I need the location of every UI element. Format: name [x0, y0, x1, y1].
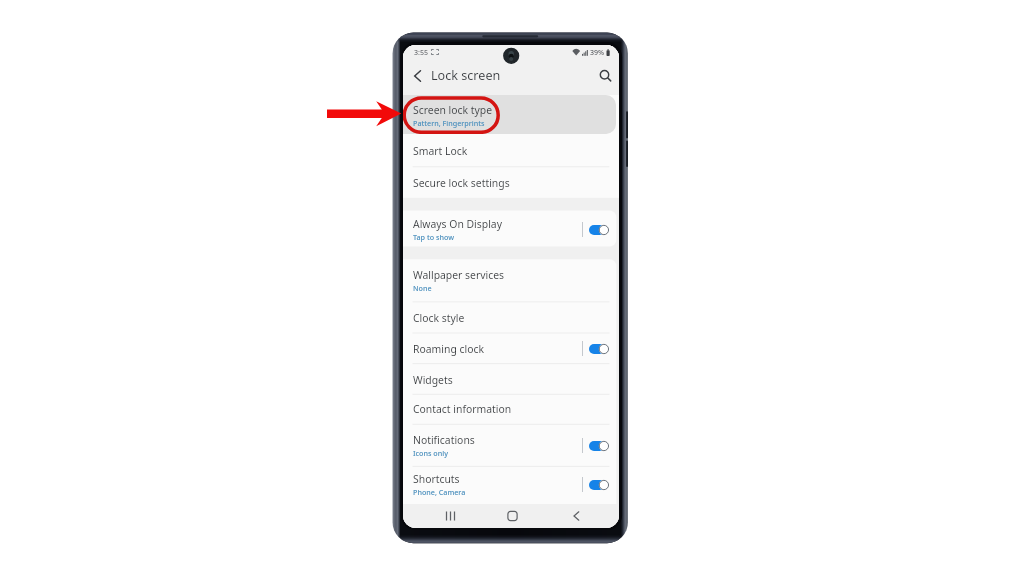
button[interactable]: Notifications: [403, 424, 619, 466]
staticText: None: [413, 283, 432, 293]
staticText: Tap to show: [413, 232, 454, 242]
staticText: Shortcuts: [413, 472, 460, 486]
button[interactable]: Secure lock settings: [403, 167, 619, 198]
button[interactable]: Clock style: [403, 302, 619, 333]
staticText: Clock style: [413, 311, 465, 325]
button[interactable]: Smart Lock: [403, 134, 619, 167]
button[interactable]: Back: [408, 67, 426, 85]
staticText: Notifications: [413, 433, 475, 447]
button[interactable]: Screen lock type: [403, 95, 616, 134]
staticText: Wallpaper services: [413, 268, 505, 282]
button[interactable]: Shortcuts: [403, 466, 619, 503]
staticText: Widgets: [413, 373, 453, 387]
staticText: 3:55: [414, 47, 429, 57]
staticText: Phone, Camera: [413, 487, 466, 497]
staticText: Screen lock type: [413, 103, 493, 117]
button[interactable]: Roaming clock toggle, on: [589, 344, 609, 354]
staticText: Icons only: [413, 448, 448, 458]
staticText: Smart Lock: [413, 144, 468, 158]
staticText: Roaming clock: [413, 342, 484, 356]
button[interactable]: Shortcuts toggle, on: [589, 480, 609, 490]
button[interactable]: Wallpaper services: [403, 259, 619, 302]
button[interactable]: Home: [497, 504, 528, 528]
button[interactable]: Recents: [435, 504, 466, 528]
staticText: 39%: [590, 47, 605, 57]
button[interactable]: Always On Display: [403, 211, 619, 247]
button[interactable]: Widgets: [403, 364, 619, 395]
staticText: Secure lock settings: [413, 176, 510, 190]
button[interactable]: Always On Display toggle, on: [589, 225, 609, 235]
button[interactable]: Search: [596, 67, 614, 85]
staticText: Pattern, Fingerprints: [413, 118, 485, 128]
staticText: Lock screen: [431, 67, 501, 84]
button[interactable]: Notifications toggle, on: [589, 441, 609, 451]
button[interactable]: Back: [560, 504, 591, 528]
staticText: Always On Display: [413, 217, 502, 231]
button[interactable]: Contact information: [403, 394, 619, 424]
button[interactable]: Roaming clock: [403, 333, 619, 364]
staticText: Contact information: [413, 402, 512, 416]
